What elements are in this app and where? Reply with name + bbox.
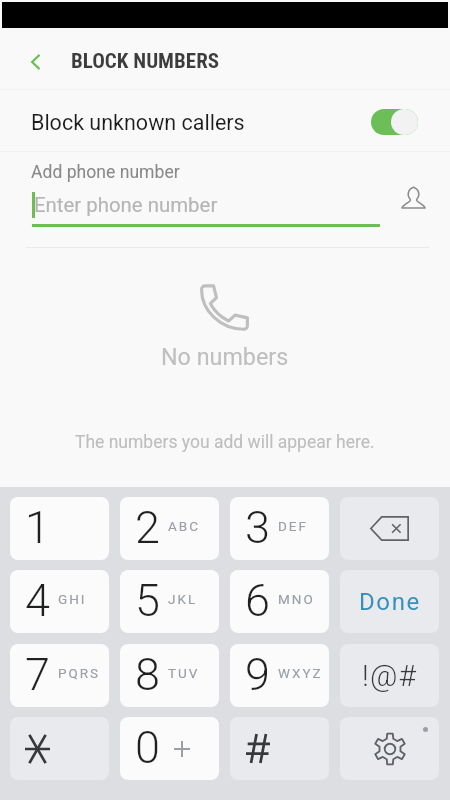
staticText: 6 (245, 574, 270, 627)
staticText: 0 (135, 721, 160, 774)
staticText: No numbers (161, 343, 289, 370)
staticText: Block unknown callers (31, 110, 245, 135)
button[interactable]: 2 (120, 497, 219, 560)
staticText: Enter phone number (34, 193, 218, 217)
staticText: BLOCK NUMBERS (71, 49, 220, 74)
staticText: DEF (278, 518, 308, 534)
staticText: TUV (168, 665, 200, 681)
button[interactable]: 0 (120, 717, 219, 780)
button[interactable]: 3 (230, 497, 329, 560)
staticText: The numbers you add will appear here. (75, 432, 375, 453)
button[interactable]: Block unknown callers (0, 95, 450, 149)
staticText: !@# (362, 658, 418, 693)
staticText: MNO (278, 591, 315, 607)
button[interactable]: 9 (230, 644, 329, 707)
button[interactable]: 4 (10, 570, 109, 633)
button[interactable] (230, 717, 329, 780)
staticText: 9 (245, 648, 270, 701)
staticText: Add phone number (31, 162, 180, 183)
button[interactable]: Done (340, 570, 439, 633)
staticText: PQRS (58, 665, 101, 681)
button[interactable]: 5 (120, 570, 219, 633)
staticText: 1 (25, 501, 50, 554)
staticText: 7 (25, 648, 50, 701)
button[interactable]: Navigate up (20, 46, 52, 78)
other: Keyboard settings (373, 732, 407, 766)
button[interactable]: 1 (10, 497, 109, 560)
button[interactable]: Open contacts (394, 178, 432, 216)
staticText: ABC (168, 518, 201, 534)
staticText: GHI (58, 591, 87, 607)
staticText: 3 (245, 501, 270, 554)
staticText: 4 (25, 574, 50, 627)
button[interactable]: Keyboard settings (340, 717, 439, 780)
button[interactable]: 8 (120, 644, 219, 707)
staticText: 5 (135, 574, 160, 627)
staticText: 8 (135, 648, 160, 701)
button[interactable] (10, 717, 109, 780)
staticText: WXYZ (278, 665, 323, 681)
staticText: JKL (168, 591, 198, 607)
staticText: Done (359, 588, 421, 616)
button[interactable]: Backspace (340, 497, 439, 560)
other: Backspace (370, 516, 409, 541)
staticText: 2 (135, 501, 160, 554)
button[interactable]: !@# (340, 644, 439, 707)
button[interactable]: 7 (10, 644, 109, 707)
button[interactable]: 6 (230, 570, 329, 633)
